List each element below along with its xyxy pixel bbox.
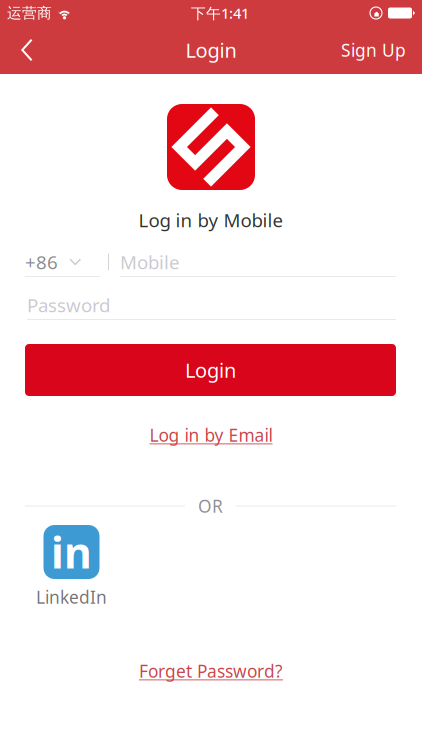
button[interactable]: Back — [0, 26, 49, 74]
staticText: Login — [185, 37, 236, 63]
staticText: Log in by Email — [149, 423, 272, 446]
staticText: in — [51, 524, 92, 580]
staticText: Forget Password? — [139, 659, 283, 682]
button[interactable]: Login — [25, 344, 396, 396]
button[interactable]: in — [32, 525, 111, 607]
staticText: Login — [185, 357, 236, 383]
staticText: 下午1:41 — [191, 3, 249, 23]
button[interactable]: Forget Password? — [139, 659, 283, 683]
staticText: Sign Up — [341, 38, 406, 61]
staticText: 运营商 — [7, 4, 52, 22]
staticText: Log in by Mobile — [138, 208, 283, 232]
staticText: OR — [198, 494, 223, 517]
staticText: Password — [27, 293, 110, 317]
button[interactable]: Sign Up — [325, 26, 422, 74]
staticText: Mobile — [120, 250, 180, 274]
staticText: LinkedIn — [36, 585, 107, 608]
button[interactable]: Log in by Email — [149, 423, 272, 447]
staticText: +86 — [25, 250, 58, 274]
button[interactable]: +86 — [25, 247, 100, 277]
